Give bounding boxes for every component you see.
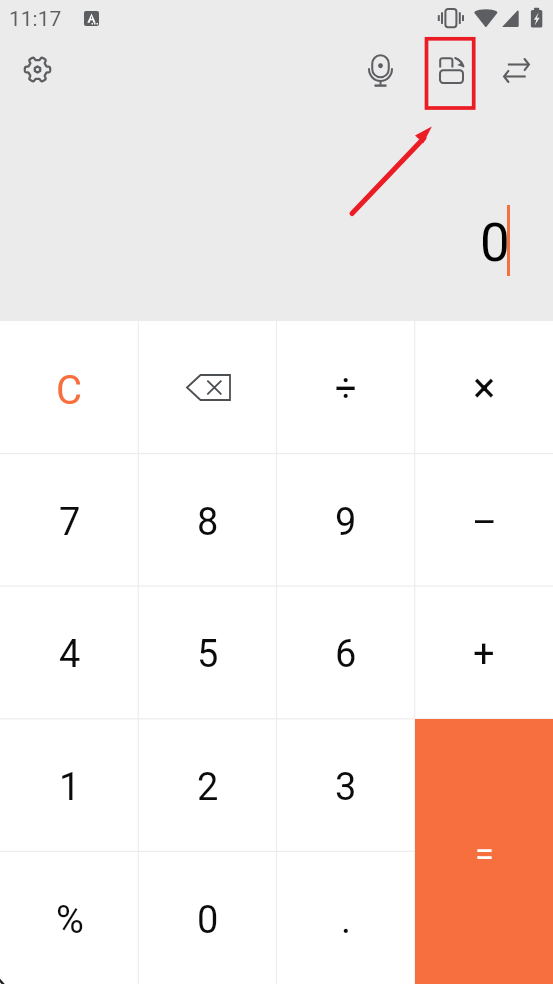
button[interactable]: Backspace [139, 321, 277, 453]
staticText: 4 [59, 632, 81, 677]
button[interactable]: Rotate screen [428, 47, 475, 93]
button[interactable]: . [277, 851, 415, 984]
button[interactable]: Voice input [356, 47, 404, 93]
staticText: % [56, 898, 84, 943]
button[interactable]: = [415, 719, 553, 984]
button[interactable]: – [415, 453, 553, 585]
staticText: 3 [335, 765, 357, 810]
button[interactable]: Settings [13, 45, 61, 93]
button[interactable]: ÷ [277, 321, 415, 453]
staticText: 5 [197, 632, 219, 677]
button[interactable]: 5 [139, 585, 277, 718]
button[interactable]: 3 [277, 718, 415, 851]
button[interactable]: 1 [0, 718, 139, 851]
staticText: 9 [335, 500, 357, 545]
staticText: = [475, 834, 494, 874]
staticText: 0 [480, 212, 510, 274]
button[interactable]: 0 [139, 851, 277, 984]
staticText: 8 [197, 500, 219, 545]
staticText: 7 [59, 500, 81, 545]
staticText: 11:17 [9, 7, 62, 32]
button[interactable]: C [0, 321, 139, 453]
staticText: C [56, 367, 83, 414]
button[interactable]: × [415, 321, 553, 453]
staticText: 1 [59, 765, 81, 810]
button[interactable]: Switch mode [492, 47, 540, 93]
staticText: × [473, 363, 496, 412]
staticText: . [341, 898, 352, 943]
button[interactable]: 7 [0, 453, 139, 585]
button[interactable]: 2 [139, 718, 277, 851]
staticText: – [472, 500, 497, 545]
button[interactable]: 9 [277, 453, 415, 585]
button[interactable]: % [0, 851, 139, 984]
staticText: 2 [197, 765, 219, 810]
button[interactable]: + [415, 585, 553, 718]
staticText: + [473, 632, 495, 677]
staticText: ÷ [335, 366, 357, 411]
staticText: 6 [335, 632, 357, 677]
staticText: 0 [197, 898, 219, 943]
button[interactable]: 4 [0, 585, 139, 718]
button[interactable]: 6 [277, 585, 415, 718]
button[interactable]: 8 [139, 453, 277, 585]
